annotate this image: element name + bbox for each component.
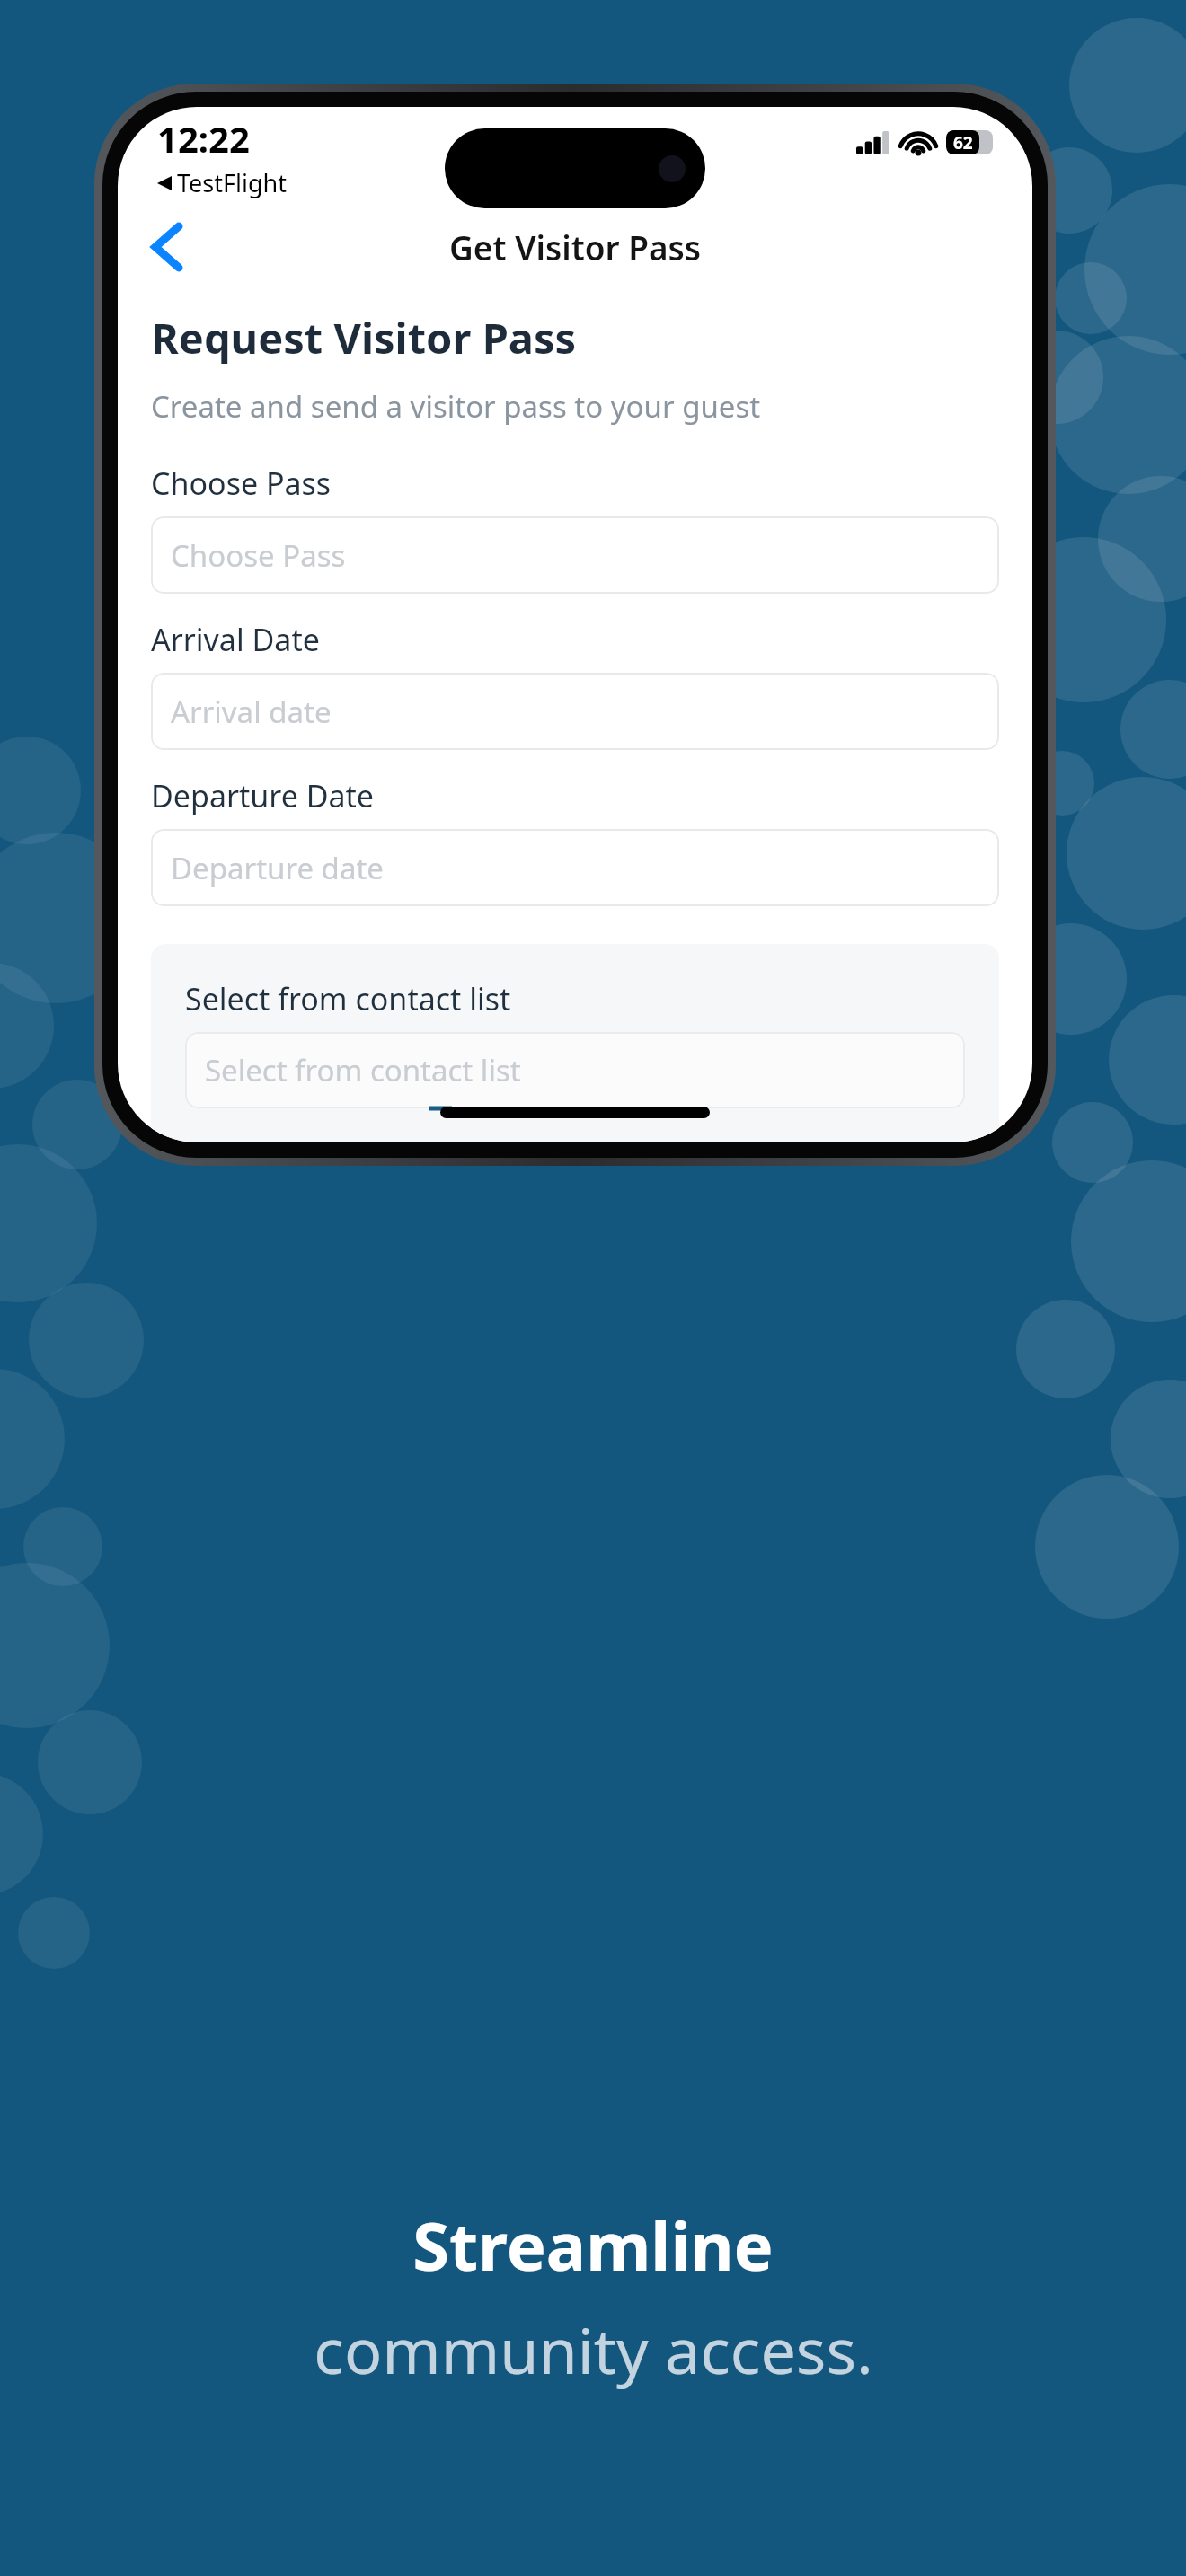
staticText: TestFlight (177, 166, 288, 199)
staticText: Departure date (171, 848, 384, 888)
button[interactable]: Choose Pass (151, 516, 999, 594)
button[interactable]: Arrival date (151, 673, 999, 750)
button[interactable]: Select from contact list (185, 1032, 965, 1108)
button[interactable]: Back (139, 219, 195, 275)
staticText: community access. (314, 2307, 873, 2392)
staticText: Arrival Date (151, 619, 320, 660)
staticText: Get Visitor Pass (449, 225, 702, 269)
staticText: Streamline (412, 2200, 774, 2290)
staticText: 12:22 (157, 114, 250, 163)
staticText: Create and send a visitor pass to your g… (151, 386, 761, 427)
staticText: Select from contact list (205, 1050, 521, 1090)
staticText: Choose Pass (151, 463, 332, 504)
staticText: Choose Pass (171, 535, 346, 576)
button[interactable]: Departure date (151, 829, 999, 906)
staticText: 62 (953, 131, 973, 154)
staticText: Request Visitor Pass (151, 309, 577, 366)
staticText: Select from contact list (185, 978, 511, 1019)
staticText: Departure Date (151, 775, 375, 816)
staticText: Arrival date (171, 692, 332, 732)
